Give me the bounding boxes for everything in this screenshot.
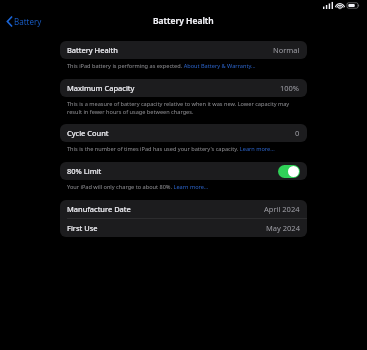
staticText: Cycle Count <box>67 128 109 138</box>
staticText: Battery <box>14 16 42 27</box>
button[interactable]: Manufacture Date <box>60 200 307 218</box>
staticText: 80% Limit <box>67 166 102 176</box>
button[interactable]: 80% Limit <box>60 162 307 180</box>
staticText: 100% <box>280 83 300 93</box>
staticText: This is the number of times iPad has use… <box>67 145 275 153</box>
staticText: First Use <box>67 223 98 233</box>
staticText: This iPad battery is performing as expec… <box>67 62 256 70</box>
button[interactable]: 80 percent charge limit toggle <box>278 165 300 178</box>
button[interactable]: Maximum Capacity <box>60 79 307 97</box>
button[interactable]: First Use <box>60 219 307 237</box>
button[interactable]: Battery Health <box>60 41 307 59</box>
staticText: This is a measure of battery capacity re… <box>67 100 305 115</box>
staticText: April 2024 <box>264 204 300 214</box>
button[interactable]: Battery <box>0 13 50 30</box>
staticText: Maximum Capacity <box>67 83 135 93</box>
staticText: Battery Health <box>153 15 214 27</box>
staticText: Battery Health <box>67 45 118 55</box>
staticText: Your iPad will only charge to about 80%.… <box>67 183 209 191</box>
staticText: Normal <box>273 45 300 55</box>
staticText: May 2024 <box>266 223 300 233</box>
button[interactable]: Cycle Count <box>60 124 307 142</box>
staticText: 0 <box>295 128 300 138</box>
staticText: Manufacture Date <box>67 204 131 214</box>
